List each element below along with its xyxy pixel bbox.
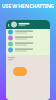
staticText: ‹ [7, 19, 9, 30]
staticText: USE WHEN CHATTING [2, 2, 54, 10]
